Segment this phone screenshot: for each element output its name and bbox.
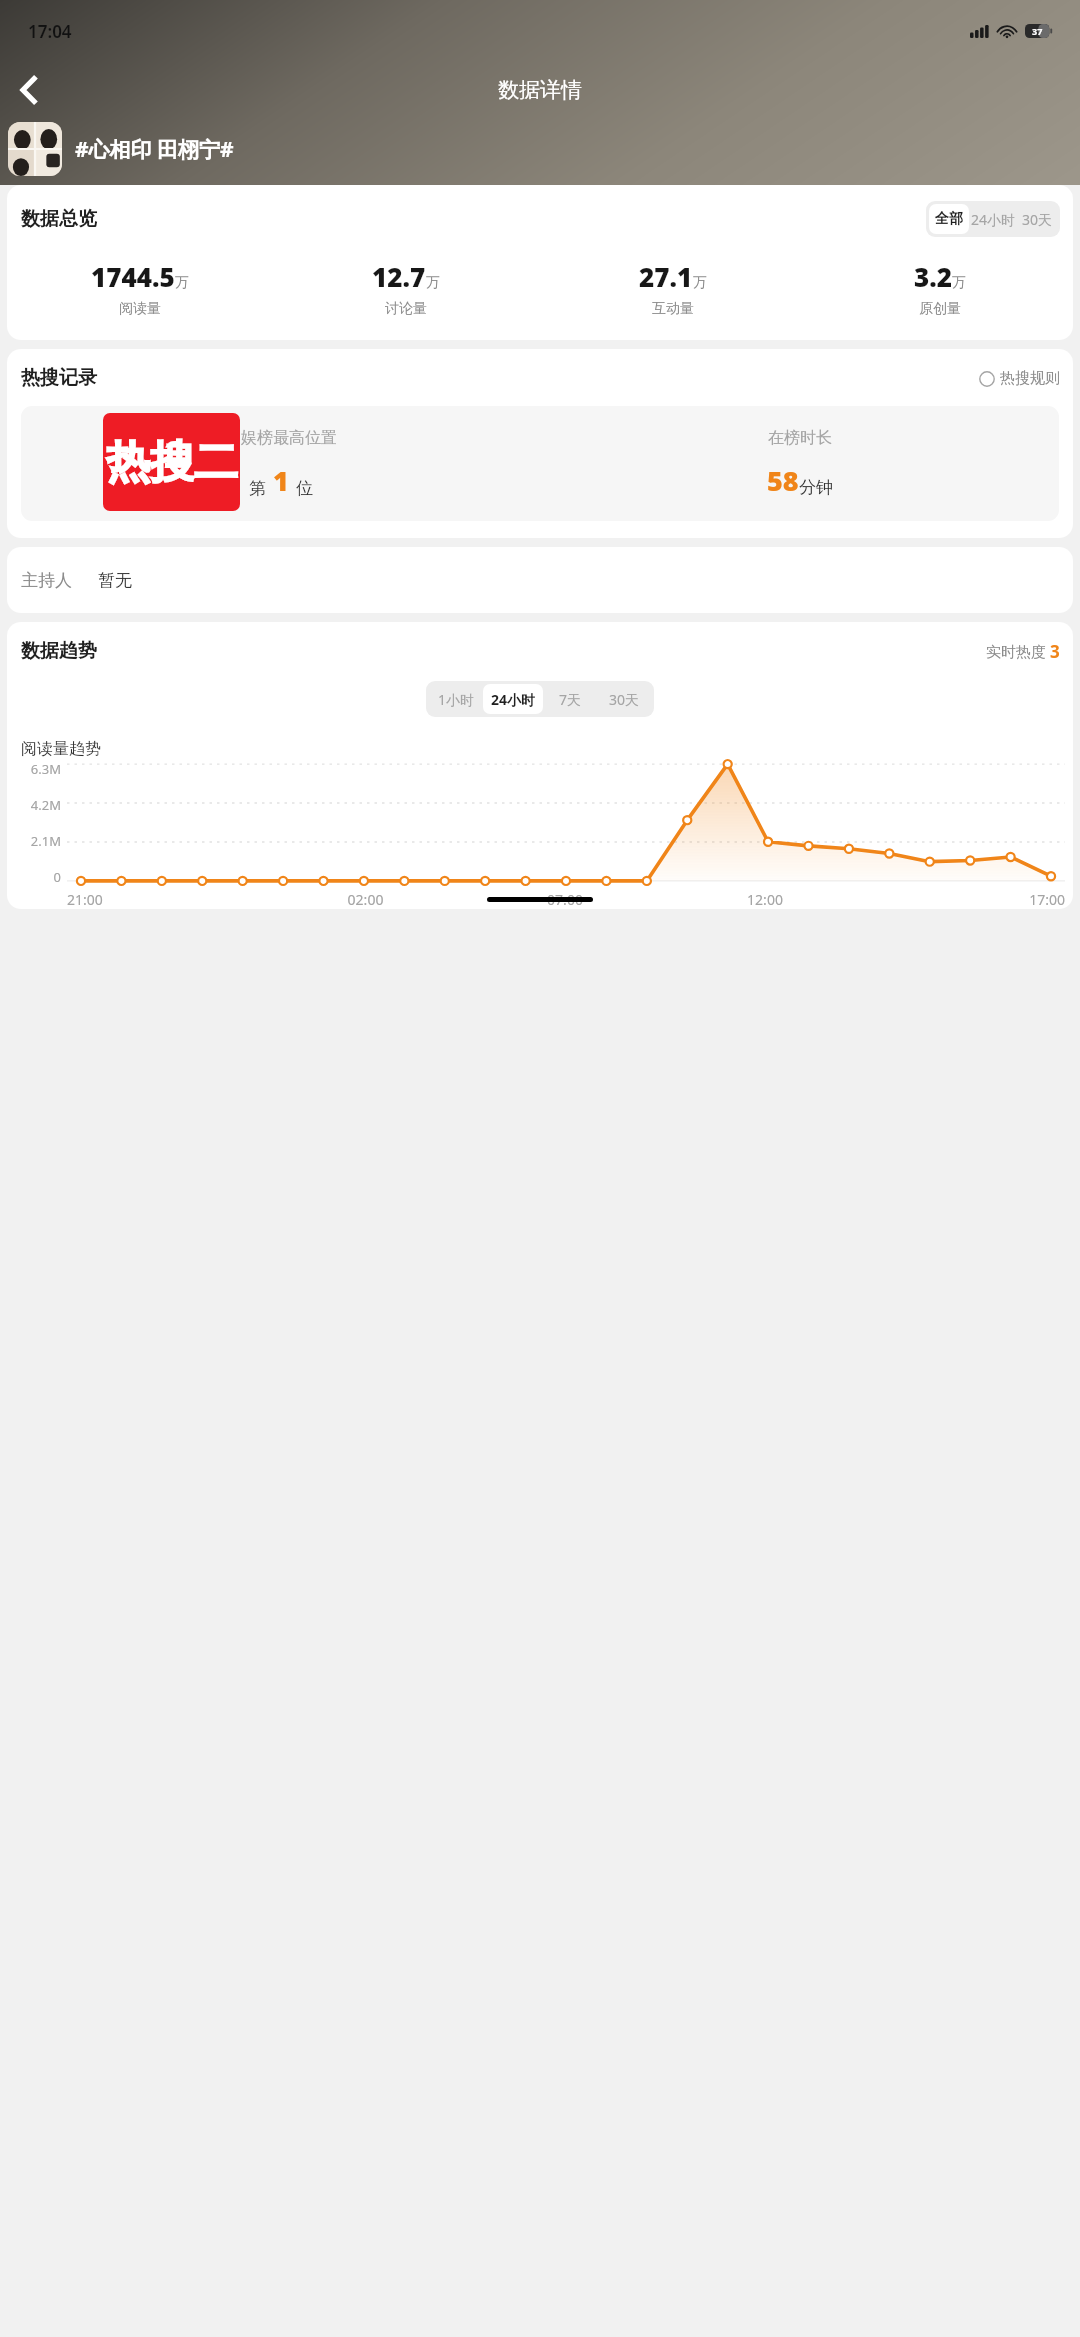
staticText: 万 [693,274,707,292]
staticText: 12:00 [665,890,865,909]
staticText: 6.3M [21,760,61,778]
staticText: 万 [952,274,966,292]
staticText: 30天 [1022,210,1053,229]
button[interactable]: 24小时 [483,684,543,714]
staticText: 热搜二 [106,435,238,490]
staticText: 阅读量 [119,300,161,318]
staticText: 12.7 [372,259,426,294]
staticText: 在榜时长 [768,428,832,448]
button[interactable]: 热搜规则 [979,369,1060,388]
staticText: 4.2M [21,796,61,814]
staticText: 数据详情 [498,77,582,103]
button[interactable]: 24小时 [969,204,1017,234]
staticText: 17:04 [28,20,72,43]
staticText: 分钟 [799,477,833,498]
staticText: 1 [266,462,296,499]
button[interactable]: Back [6,67,52,113]
staticText: 互动量 [652,300,694,318]
staticText: 热搜规则 [1000,369,1060,388]
button[interactable]: 30天 [597,684,651,714]
button[interactable]: 热搜二 [103,413,240,511]
staticText: 全部 [935,210,963,228]
staticText: 3 [1050,640,1060,663]
staticText: 7天 [559,690,582,709]
staticText: 21:00 [67,890,266,909]
staticText: 2.1M [21,832,61,850]
staticText: 数据趋势 [21,639,97,663]
staticText: 主持人 [21,570,72,591]
staticText: 07:00 [465,890,665,909]
staticText: 万 [175,274,189,292]
staticText: 原创量 [919,300,961,318]
staticText: 阅读量趋势 [21,739,101,759]
staticText: 24小时 [491,690,536,709]
staticText: 位 [296,478,313,499]
staticText: 17:00 [865,890,1065,909]
button[interactable] [8,122,62,176]
staticText: 27.1 [639,259,693,294]
button[interactable]: #心相印 田栩宁# [75,135,234,164]
staticText: 02:00 [266,890,465,909]
button[interactable]: 主持人 [7,547,1073,613]
staticText: 37 [1032,25,1043,37]
staticText: 0 [21,868,61,886]
button[interactable]: 1小时 [429,684,483,714]
button[interactable]: 全部 [929,204,969,234]
staticText: 热搜记录 [21,366,97,390]
staticText: 1小时 [438,690,475,709]
staticText: 数据总览 [21,207,97,231]
staticText: 实时热度 [986,641,1050,661]
staticText: 1744.5 [91,259,175,294]
staticText: 30天 [609,690,640,709]
staticText: 万 [426,274,440,292]
staticText: 3.2 [914,259,952,294]
staticText: 讨论量 [385,300,427,318]
button[interactable]: 7天 [543,684,597,714]
staticText: 58 [767,462,799,499]
staticText: 第 [249,478,266,499]
staticText: 暂无 [98,570,132,591]
staticText: 文娱榜最高位置 [225,428,337,448]
staticText: 24小时 [971,210,1016,229]
button[interactable]: 30天 [1017,204,1057,234]
